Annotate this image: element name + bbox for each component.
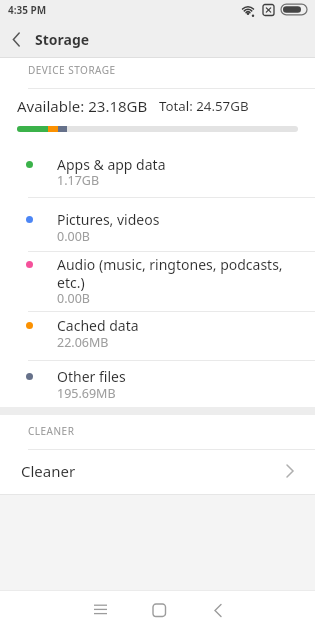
- staticText: etc.): [57, 273, 85, 292]
- staticText: 0.00B: [57, 228, 90, 245]
- staticText: 22.06MB: [57, 334, 109, 351]
- staticText: Available: 23.18GB: [17, 96, 148, 116]
- button[interactable]: [144, 595, 174, 625]
- staticText: Audio (music, ringtones, podcasts,: [57, 255, 283, 274]
- staticText: Cached data: [57, 316, 139, 335]
- staticText: Apps & app data: [57, 155, 166, 174]
- button[interactable]: [6, 24, 38, 56]
- button[interactable]: [85, 595, 115, 625]
- button[interactable]: [203, 595, 233, 625]
- staticText: Other files: [57, 367, 126, 386]
- button[interactable]: [0, 197, 315, 251]
- staticText: 1.17GB: [57, 172, 100, 189]
- staticText: Pictures, videos: [57, 210, 160, 229]
- staticText: Total: 24.57GB: [159, 97, 249, 115]
- button[interactable]: [0, 449, 315, 494]
- staticText: Cleaner: [21, 461, 76, 481]
- button[interactable]: [0, 360, 315, 407]
- button[interactable]: [0, 140, 315, 197]
- staticText: Storage: [35, 30, 90, 49]
- button[interactable]: [0, 311, 315, 360]
- staticText: 0.00B: [57, 290, 90, 307]
- staticText: CLEANER: [28, 424, 75, 438]
- button[interactable]: [0, 251, 315, 314]
- staticText: 4:35 PM: [8, 3, 47, 17]
- staticText: DEVICE STORAGE: [28, 63, 116, 77]
- staticText: 195.69MB: [57, 385, 116, 402]
